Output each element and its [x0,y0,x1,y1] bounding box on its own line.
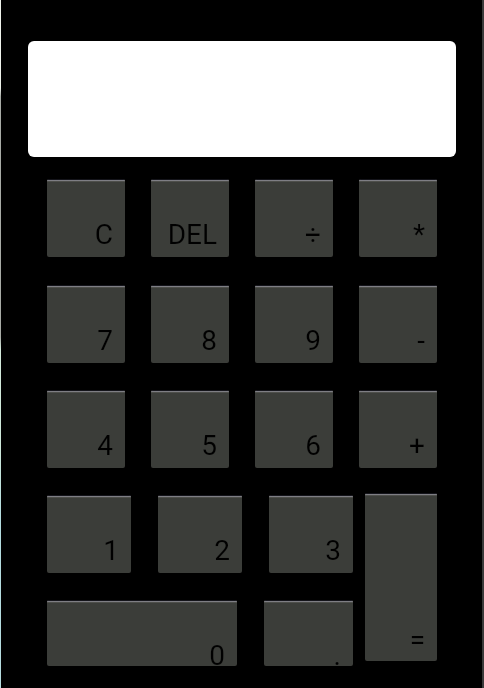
button[interactable]: Decimal point [264,600,353,666]
staticText: 3 [269,534,341,567]
button[interactable]: Seven [47,285,125,363]
staticText: = [365,623,425,656]
staticText: - [359,324,425,357]
staticText: 5 [151,429,217,462]
staticText: 2 [158,534,230,567]
button[interactable]: Two [158,495,242,573]
button[interactable]: Clear [47,179,125,257]
staticText: ÷ [255,218,321,251]
button[interactable]: Four [47,390,125,468]
staticText: 0 [47,639,225,666]
staticText: + [359,429,425,462]
button[interactable]: Six [255,390,333,468]
staticText: 8 [151,324,217,357]
button[interactable]: Nine [255,285,333,363]
button[interactable]: One [47,495,131,573]
button[interactable]: Delete [151,179,229,257]
button[interactable]: Multiply [359,179,437,257]
button[interactable]: Eight [151,285,229,363]
staticText: * [359,218,425,251]
button[interactable]: Five [151,390,229,468]
button[interactable]: Plus [359,390,437,468]
button[interactable]: Three [269,495,353,573]
button[interactable]: Zero [47,600,237,666]
button[interactable]: Calculator display [28,41,456,157]
staticText: DEL [151,218,217,251]
staticText: 6 [255,429,321,462]
staticText: 4 [47,429,113,462]
button[interactable]: Minus [359,285,437,363]
staticText: . [264,639,341,666]
staticText: 1 [47,534,119,567]
staticText: 7 [47,324,113,357]
button[interactable]: Divide [255,179,333,257]
staticText: 9 [255,324,321,357]
staticText: C [47,218,113,251]
button[interactable]: Equals [365,493,437,661]
